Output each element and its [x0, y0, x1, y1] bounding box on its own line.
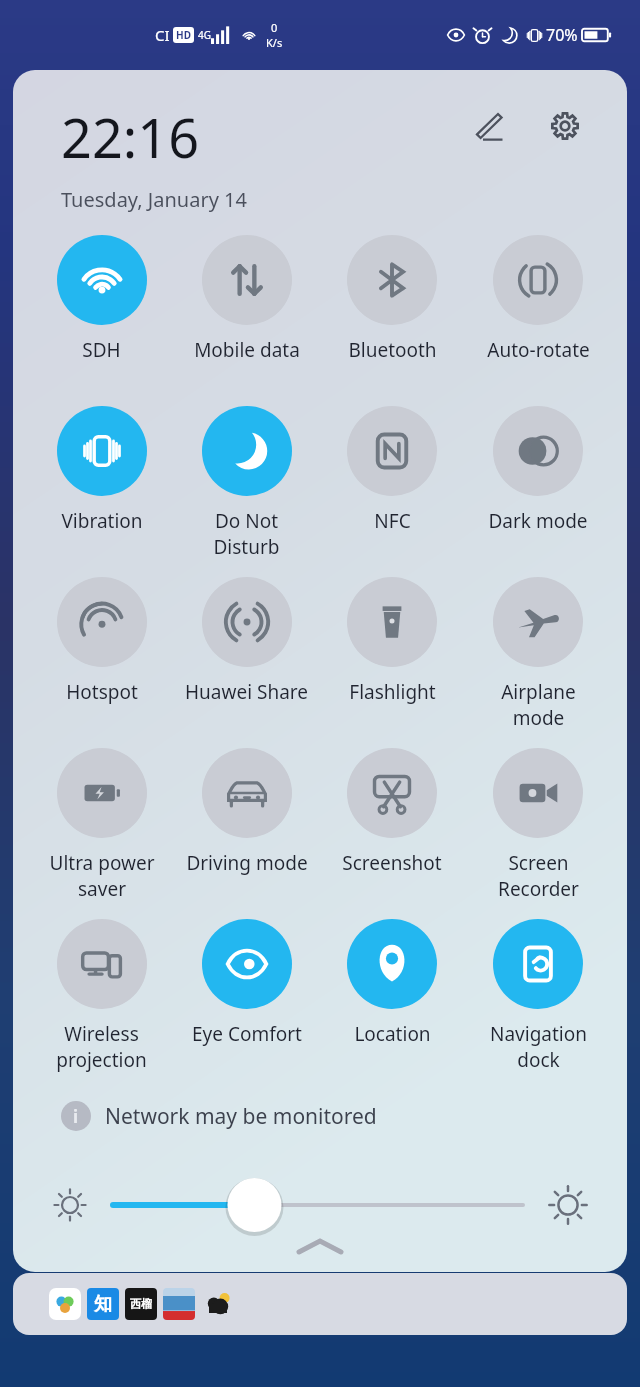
- staticText: 4G: [198, 28, 211, 42]
- button[interactable]: Auto-rotate: [465, 235, 611, 406]
- button[interactable]: Mobile data: [174, 235, 319, 406]
- staticText: Eye Comfort: [192, 1021, 302, 1047]
- staticText: Navigation dock: [490, 1021, 587, 1072]
- staticText: Vibration: [61, 508, 143, 534]
- button[interactable]: Bluetooth: [319, 235, 465, 406]
- staticText: HD: [176, 28, 191, 42]
- button[interactable]: Driving mode: [174, 748, 319, 919]
- button[interactable]: Do Not Disturb: [174, 406, 319, 577]
- staticText: 70%: [546, 24, 578, 46]
- button[interactable]: SDH: [29, 235, 174, 406]
- staticText: Screen Recorder: [498, 850, 579, 901]
- button[interactable]: 知: [13, 1273, 627, 1335]
- staticText: CI: [155, 25, 170, 45]
- button[interactable]: Eye Comfort: [174, 919, 319, 1090]
- staticText: NFC: [374, 508, 411, 534]
- staticText: Mobile data: [194, 337, 300, 363]
- staticText: Tuesday, January 14: [61, 186, 247, 213]
- staticText: Bluetooth: [348, 337, 437, 363]
- button[interactable]: Settings: [539, 100, 591, 152]
- button[interactable]: Wireless projection: [29, 919, 174, 1090]
- button[interactable]: Location: [319, 919, 465, 1090]
- staticText: Screenshot: [342, 850, 442, 876]
- staticText: i: [73, 1105, 79, 1128]
- staticText: 22:16: [61, 100, 200, 174]
- button[interactable]: Hotspot: [29, 577, 174, 748]
- button[interactable]: Edit: [463, 100, 515, 152]
- button[interactable]: Navigation dock: [465, 919, 611, 1090]
- staticText: Network may be monitored: [105, 1102, 377, 1131]
- staticText: Dark mode: [488, 508, 588, 534]
- button[interactable]: Dark mode: [465, 406, 611, 577]
- button[interactable]: Screen Recorder: [465, 748, 611, 919]
- staticText: K/s: [266, 35, 283, 50]
- staticText: Airplane mode: [501, 679, 576, 730]
- button[interactable]: Brightness: [113, 1177, 523, 1233]
- staticText: Location: [354, 1021, 431, 1047]
- staticText: 知: [94, 1293, 112, 1316]
- button[interactable]: Huawei Share: [174, 577, 319, 748]
- staticText: SDH: [82, 337, 121, 363]
- staticText: 西榴: [130, 1297, 152, 1311]
- button[interactable]: NFC: [319, 406, 465, 577]
- staticText: Driving mode: [186, 850, 308, 876]
- button[interactable]: Vibration: [29, 406, 174, 577]
- staticText: Auto-rotate: [487, 337, 590, 363]
- staticText: Flashlight: [349, 679, 436, 705]
- staticText: Hotspot: [66, 679, 138, 705]
- staticText: Huawei Share: [185, 679, 308, 705]
- button[interactable]: Airplane mode: [465, 577, 611, 748]
- button[interactable]: Screenshot: [319, 748, 465, 919]
- staticText: 0: [271, 20, 278, 35]
- staticText: Wireless projection: [56, 1021, 147, 1072]
- staticText: Ultra power saver: [49, 850, 155, 901]
- button[interactable]: Flashlight: [319, 577, 465, 748]
- staticText: Do Not Disturb: [213, 508, 280, 559]
- button[interactable]: Ultra power saver: [29, 748, 174, 919]
